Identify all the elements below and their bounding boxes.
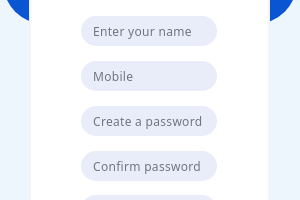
staticText: Confirm password (93, 158, 201, 174)
button[interactable]: Mobile (81, 61, 217, 91)
staticText: Enter your name (93, 23, 192, 39)
button[interactable] (81, 195, 217, 200)
staticText: Mobile (93, 68, 134, 84)
button[interactable]: Create a password (81, 106, 217, 136)
button[interactable]: Confirm password (81, 151, 217, 181)
button[interactable]: Enter your name (81, 16, 217, 46)
staticText: Create a password (93, 113, 203, 129)
